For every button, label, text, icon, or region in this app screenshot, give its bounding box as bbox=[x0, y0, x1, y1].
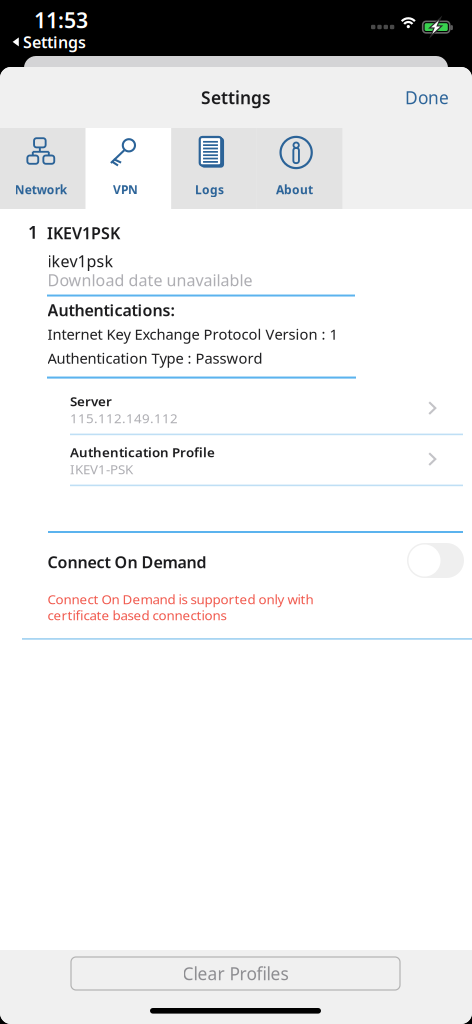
staticText: Done bbox=[405, 86, 449, 109]
button[interactable]: Network bbox=[0, 128, 86, 209]
staticText: Server bbox=[70, 392, 112, 410]
button[interactable]: Clear Profiles bbox=[71, 957, 400, 990]
button[interactable]: Logs bbox=[171, 128, 257, 209]
staticText: IKEV1-PSK bbox=[70, 460, 133, 478]
staticText: About bbox=[276, 181, 313, 197]
button[interactable]: Done bbox=[382, 67, 472, 128]
staticText: Settings bbox=[23, 31, 86, 53]
staticText: Clear Profiles bbox=[182, 962, 288, 985]
staticText: 1 bbox=[28, 220, 38, 243]
button[interactable]: VPN bbox=[86, 128, 171, 209]
staticText: 11:53 bbox=[34, 6, 88, 34]
staticText: Authentications: bbox=[47, 299, 174, 321]
staticText: Connect On Demand is supported only with bbox=[47, 590, 313, 608]
staticText: Settings bbox=[201, 86, 271, 109]
button[interactable]: Connect On Demand bbox=[400, 536, 472, 584]
staticText: Authentication Type : Password bbox=[47, 348, 262, 368]
staticText: Download date unavailable bbox=[47, 269, 252, 291]
staticText: Connect On Demand bbox=[47, 551, 206, 573]
button[interactable]: Server bbox=[0, 385, 472, 436]
button[interactable]: About bbox=[257, 128, 342, 209]
staticText: IKEV1PSK bbox=[47, 222, 120, 244]
staticText: ikev1psk bbox=[47, 250, 113, 272]
staticText: certificate based connections bbox=[47, 606, 226, 624]
staticText: Authentication Profile bbox=[70, 443, 215, 461]
staticText: Logs bbox=[195, 181, 224, 197]
staticText: 115.112.149.112 bbox=[70, 409, 178, 427]
staticText: Network bbox=[15, 181, 67, 197]
staticText: Internet Key Exchange Protocol Version :… bbox=[47, 324, 337, 344]
staticText: VPN bbox=[113, 181, 138, 197]
button[interactable]: Authentication Profile bbox=[0, 436, 472, 487]
